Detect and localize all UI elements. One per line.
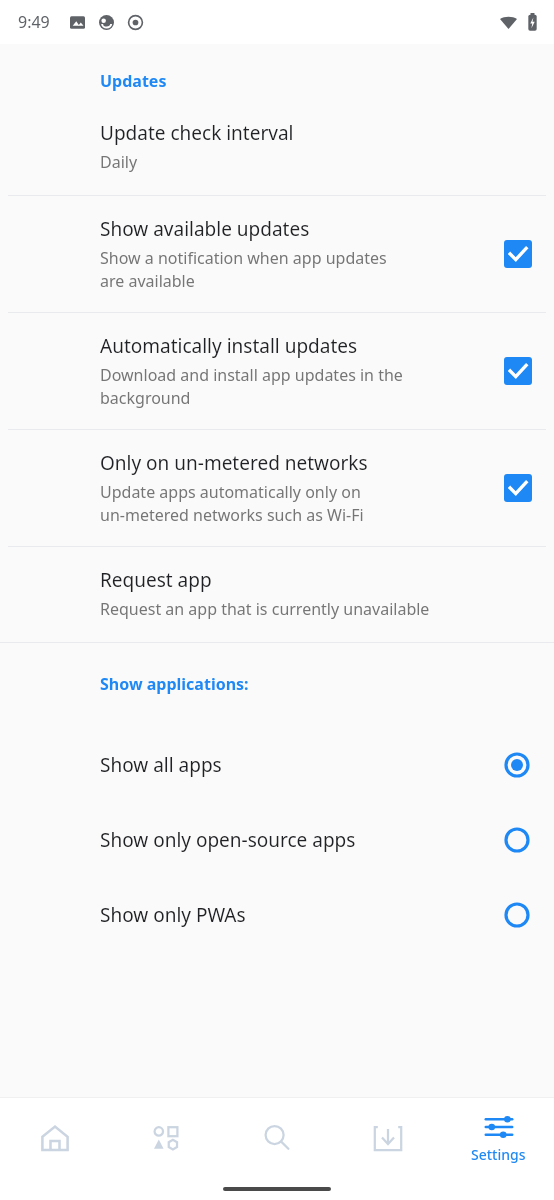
staticText: Updates — [100, 70, 167, 92]
staticText: Request app — [100, 567, 212, 593]
staticText: Request an app that is currently unavail… — [100, 598, 430, 620]
staticText: Update check interval — [100, 120, 294, 146]
staticText: Only on un-metered networks — [100, 450, 368, 476]
staticText: Show applications: — [100, 673, 249, 695]
staticText: Show a notification when app updates are… — [100, 247, 387, 292]
button[interactable]: Automatically install updates — [504, 357, 532, 385]
button[interactable]: Show all apps — [0, 727, 554, 802]
staticText: Daily — [100, 151, 138, 173]
staticText: Show all apps — [100, 752, 504, 778]
button[interactable]: Home — [0, 1098, 110, 1178]
button[interactable]: Show only PWAs — [0, 877, 554, 952]
button[interactable]: Categories — [110, 1098, 221, 1178]
staticText: Automatically install updates — [100, 333, 358, 359]
button[interactable]: Show available updates — [0, 196, 554, 312]
button[interactable]: Show available updates — [504, 240, 532, 268]
staticText: 9:49 — [18, 11, 50, 33]
staticText: Show available updates — [100, 216, 310, 242]
button[interactable]: Search — [221, 1098, 332, 1178]
button[interactable]: Only on un-metered networks — [504, 474, 532, 502]
staticText: Update apps automatically only on un-met… — [100, 481, 364, 526]
button[interactable]: Installed — [332, 1098, 443, 1178]
staticText: Download and install app updates in the … — [100, 364, 403, 409]
button[interactable]: Only on un-metered networks — [0, 430, 554, 546]
staticText: Show only PWAs — [100, 902, 504, 928]
staticText: Settings — [471, 1145, 526, 1164]
button[interactable]: Request app — [0, 547, 554, 642]
button[interactable]: Show only open-source apps — [0, 802, 554, 877]
button[interactable]: Automatically install updates — [0, 313, 554, 429]
button[interactable]: Update check interval — [0, 120, 554, 195]
staticText: Show only open-source apps — [100, 827, 504, 853]
button[interactable]: Settings — [443, 1098, 554, 1178]
